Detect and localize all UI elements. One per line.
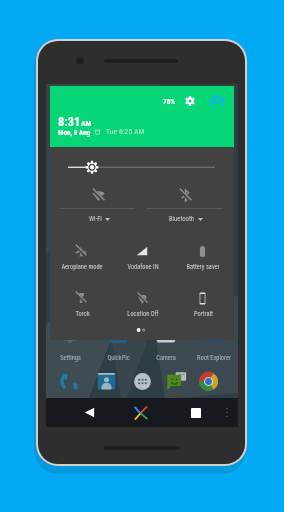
button[interactable]: Aeroplane mode — [51, 237, 111, 271]
button[interactable]: QuickPic — [94, 352, 142, 364]
button[interactable]: Torch — [51, 284, 111, 318]
staticText: Aeroplane mode — [61, 263, 103, 271]
button[interactable]: User profile — [209, 94, 224, 109]
button[interactable]: Apps — [130, 369, 154, 393]
staticText: Bluetooth — [169, 215, 195, 223]
staticText: Mon, 8 Aug — [58, 128, 91, 136]
staticText: AM — [81, 119, 92, 128]
button[interactable]: Bluetooth — [142, 180, 230, 230]
staticText: Torch — [75, 310, 90, 318]
staticText: Tue 6:25 AM — [106, 127, 145, 136]
button[interactable]: Camera — [142, 352, 190, 364]
button[interactable]: Vodafone IN — [112, 237, 172, 271]
staticText: Battery saver — [186, 263, 220, 271]
button[interactable]: Location Off — [112, 284, 172, 318]
button[interactable]: Phone — [58, 369, 82, 393]
button[interactable]: Settings — [183, 94, 197, 108]
staticText: 8:31 — [58, 114, 81, 129]
button[interactable]: Root Explorer — [190, 352, 238, 364]
button[interactable]: Home — [127, 398, 155, 427]
staticText: Settings — [60, 354, 81, 362]
staticText: Location Off — [127, 310, 159, 318]
button[interactable]: Battery saver — [172, 237, 232, 271]
staticText: Wi-Fi — [89, 215, 102, 223]
button[interactable]: More options — [213, 398, 241, 427]
staticText: Camera — [156, 354, 176, 362]
button[interactable]: Back — [75, 398, 103, 427]
button[interactable]: Chrome — [196, 369, 220, 393]
staticText: 76% — [163, 97, 175, 105]
button[interactable]: Wi-Fi — [55, 180, 143, 230]
staticText: QuickPic — [107, 354, 130, 362]
button[interactable]: Portrait — [172, 284, 232, 318]
staticText: Root Explorer — [197, 354, 231, 362]
staticText: Vodafone IN — [127, 263, 159, 271]
button[interactable]: Contacts — [94, 369, 118, 393]
button[interactable]: Messaging — [164, 369, 188, 393]
staticText: Portrait — [194, 310, 213, 318]
button[interactable]: Recent apps — [182, 398, 210, 427]
button[interactable]: Settings — [46, 352, 94, 364]
